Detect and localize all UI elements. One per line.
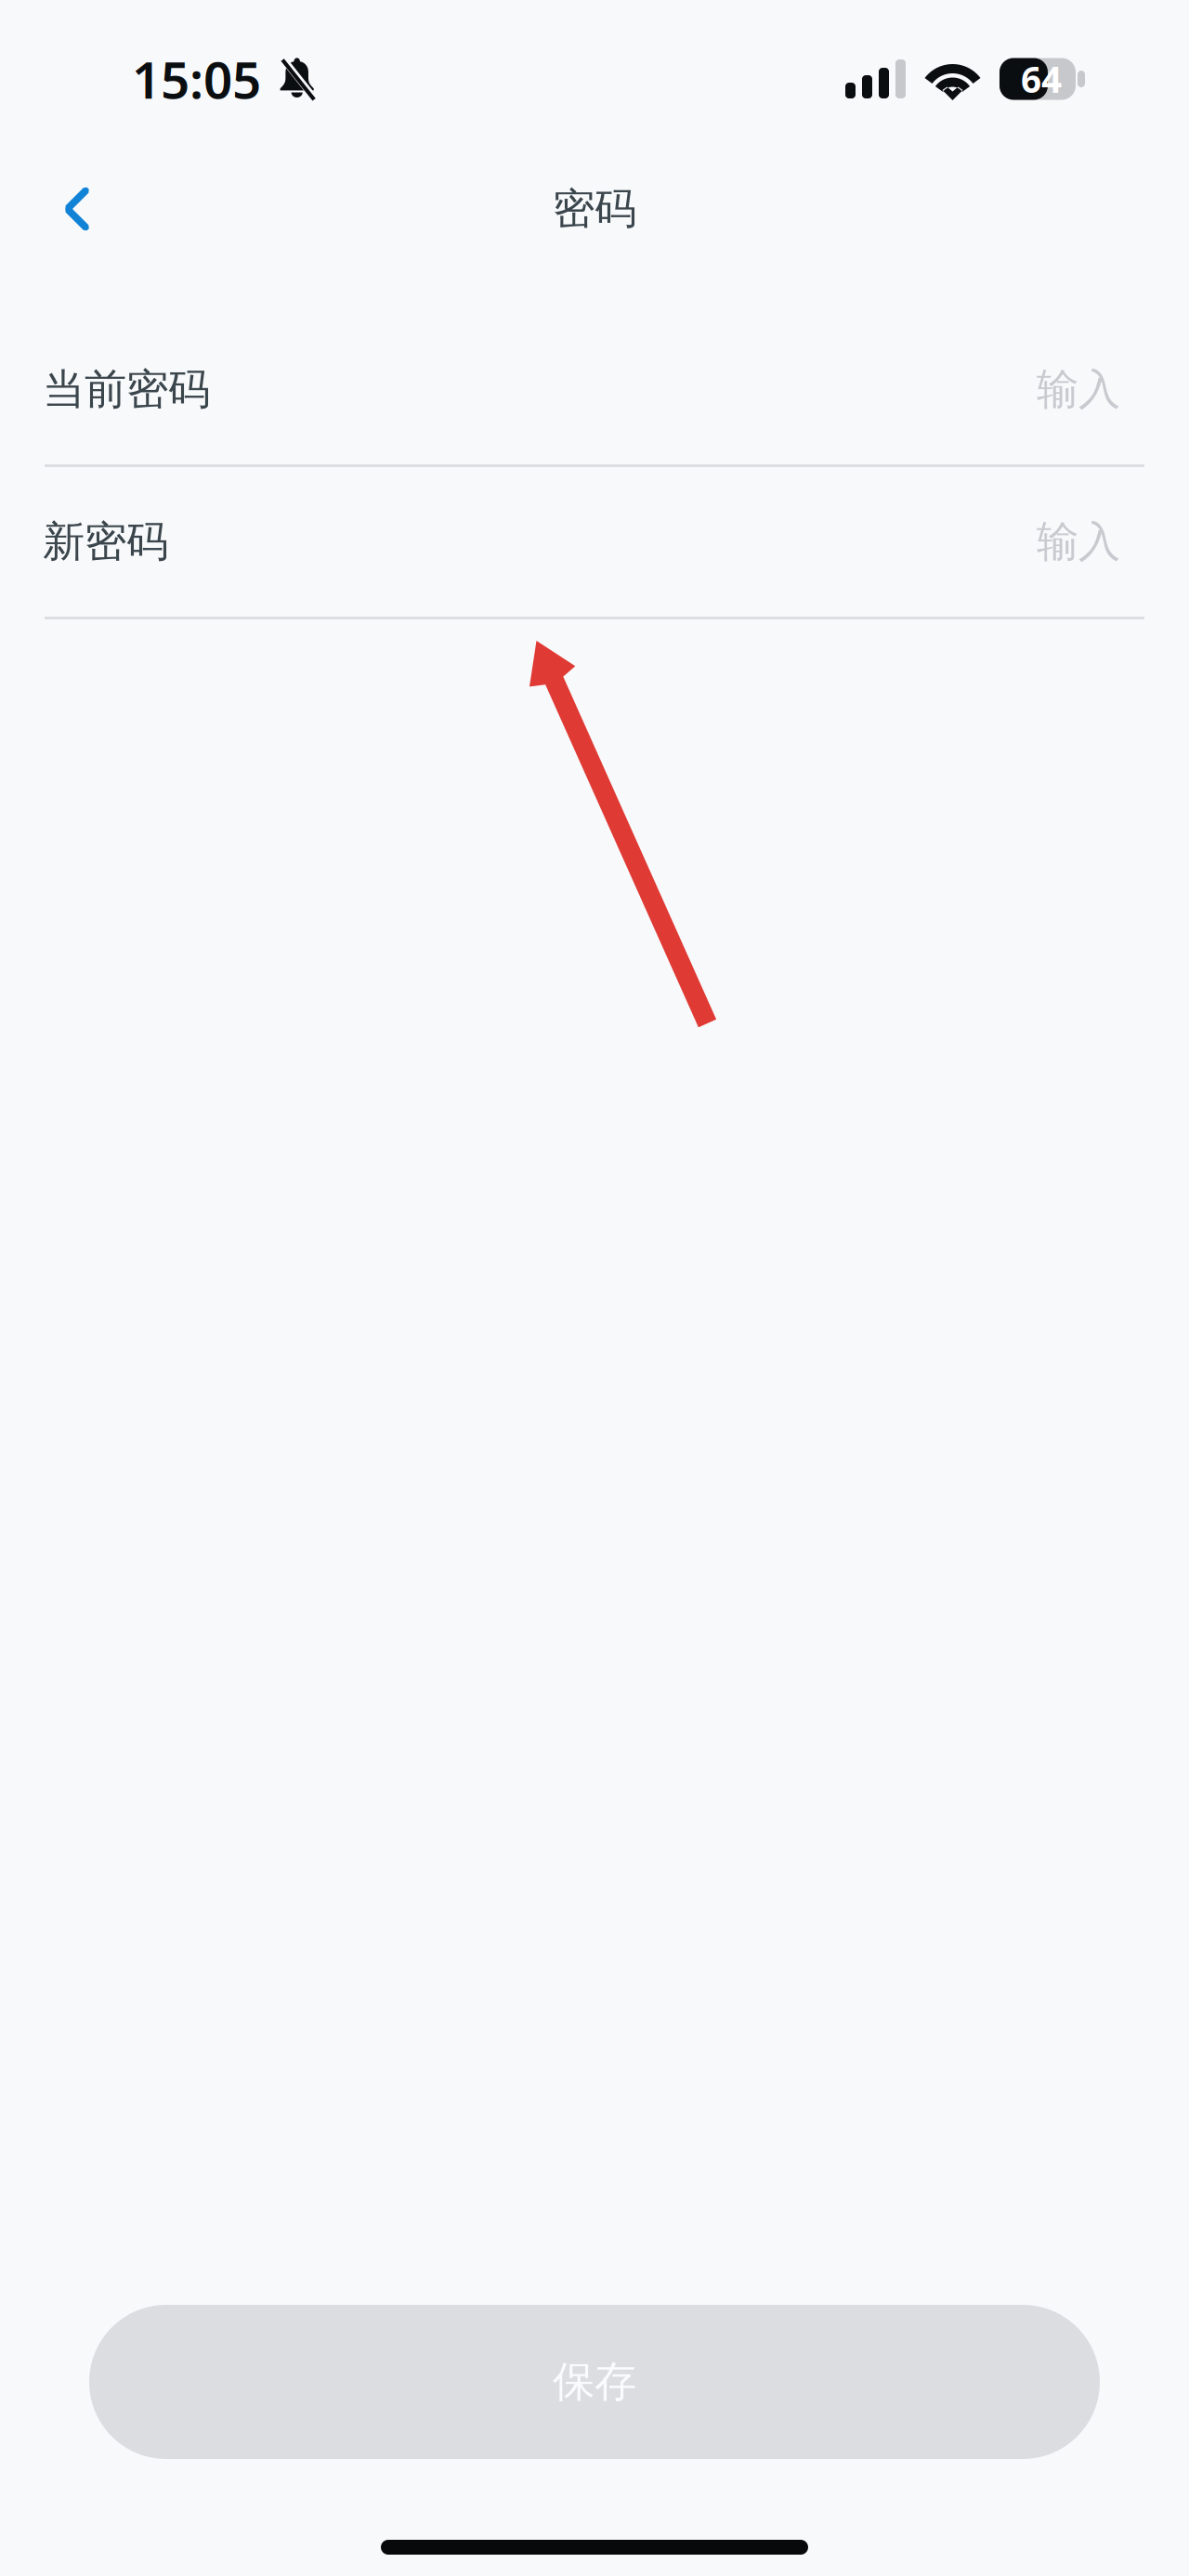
button[interactable]: 新密码 (0, 467, 1189, 617)
staticText: 当前密码 (43, 364, 210, 415)
staticText: 64 (1021, 55, 1062, 103)
staticText: 保存 (553, 2356, 636, 2408)
button[interactable]: 返回 (34, 166, 120, 252)
button[interactable]: 保存 (89, 2305, 1100, 2459)
staticText: 密码 (553, 183, 636, 235)
staticText: 15:05 (132, 45, 261, 113)
staticText: 输入 (1037, 364, 1120, 415)
staticText: 输入 (1037, 516, 1120, 568)
staticText: 新密码 (43, 516, 168, 568)
button[interactable]: 当前密码 (0, 315, 1189, 464)
